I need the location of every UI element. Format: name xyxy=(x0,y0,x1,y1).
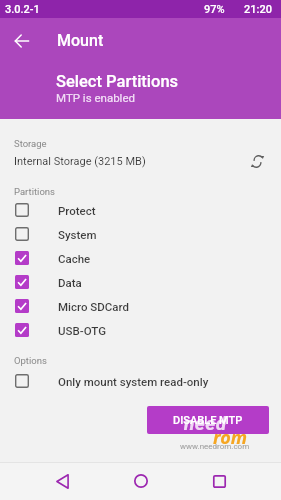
button[interactable]: Protect xyxy=(0,198,281,222)
staticText: Partitions xyxy=(14,186,55,197)
staticText: DISABLE MTP xyxy=(173,414,243,427)
button[interactable]: Home xyxy=(127,467,155,495)
staticText: Mount xyxy=(57,31,104,50)
staticText: Storage xyxy=(14,138,47,149)
button[interactable]: Data xyxy=(0,270,281,294)
staticText: USB-OTG xyxy=(58,324,106,337)
button[interactable]: DISABLE MTP xyxy=(147,406,269,434)
staticText: Protect xyxy=(58,204,96,217)
button[interactable]: System xyxy=(0,222,281,246)
staticText: 3.0.2-1 xyxy=(5,3,40,16)
button[interactable]: Refresh xyxy=(245,152,269,170)
staticText: Internal Storage (3215 MB) xyxy=(14,155,146,168)
staticText: Cache xyxy=(58,252,91,265)
staticText: MTP is enabled xyxy=(56,91,135,104)
staticText: Micro SDCard xyxy=(58,300,129,313)
staticText: 21:20 xyxy=(244,3,272,16)
button[interactable]: Recents xyxy=(205,467,233,495)
button[interactable]: USB-OTG xyxy=(0,318,281,342)
staticText: Only mount system read-only xyxy=(58,375,209,388)
button[interactable]: Only mount system read-only xyxy=(0,369,281,393)
staticText: Options xyxy=(14,355,47,366)
button[interactable]: Micro SDCard xyxy=(0,294,281,318)
button[interactable]: Back xyxy=(0,19,44,63)
staticText: Data xyxy=(58,276,82,289)
button[interactable]: Back xyxy=(48,467,76,495)
staticText: System xyxy=(58,228,97,241)
staticText: need xyxy=(184,412,227,434)
staticText: www.needrom.com xyxy=(180,442,250,451)
staticText: Select Partitions xyxy=(56,72,179,91)
staticText: rom xyxy=(213,425,248,450)
staticText: 97% xyxy=(204,3,225,16)
button[interactable]: Cache xyxy=(0,246,281,270)
